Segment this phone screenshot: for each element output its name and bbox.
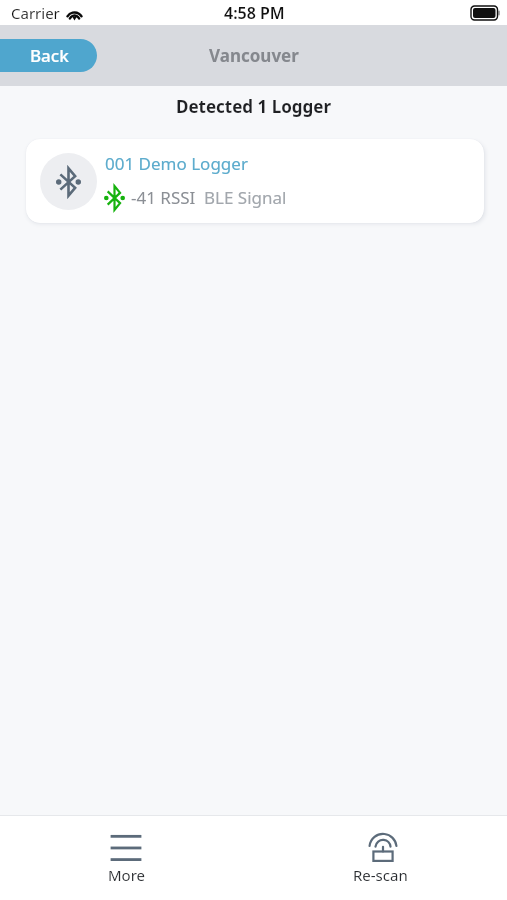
staticText: Carrier [11,3,60,23]
staticText: Back [30,44,69,67]
button[interactable]: Re-scan [253,816,507,900]
staticText: Vancouver [209,44,299,67]
staticText: 001 Demo Logger [105,152,248,175]
staticText: BLE Signal [204,186,287,209]
button[interactable]: 001 Demo Logger [26,139,484,223]
other: More [112,832,140,860]
staticText: -41 RSSI [131,186,196,209]
staticText: 4:58 PM [224,2,285,24]
staticText: More [108,865,146,885]
button[interactable]: Back [0,39,97,72]
staticText: Re-scan [353,865,408,885]
button[interactable]: More [0,816,253,900]
staticText: Detected 1 Logger [0,95,507,118]
other: Re-scan [369,834,397,862]
